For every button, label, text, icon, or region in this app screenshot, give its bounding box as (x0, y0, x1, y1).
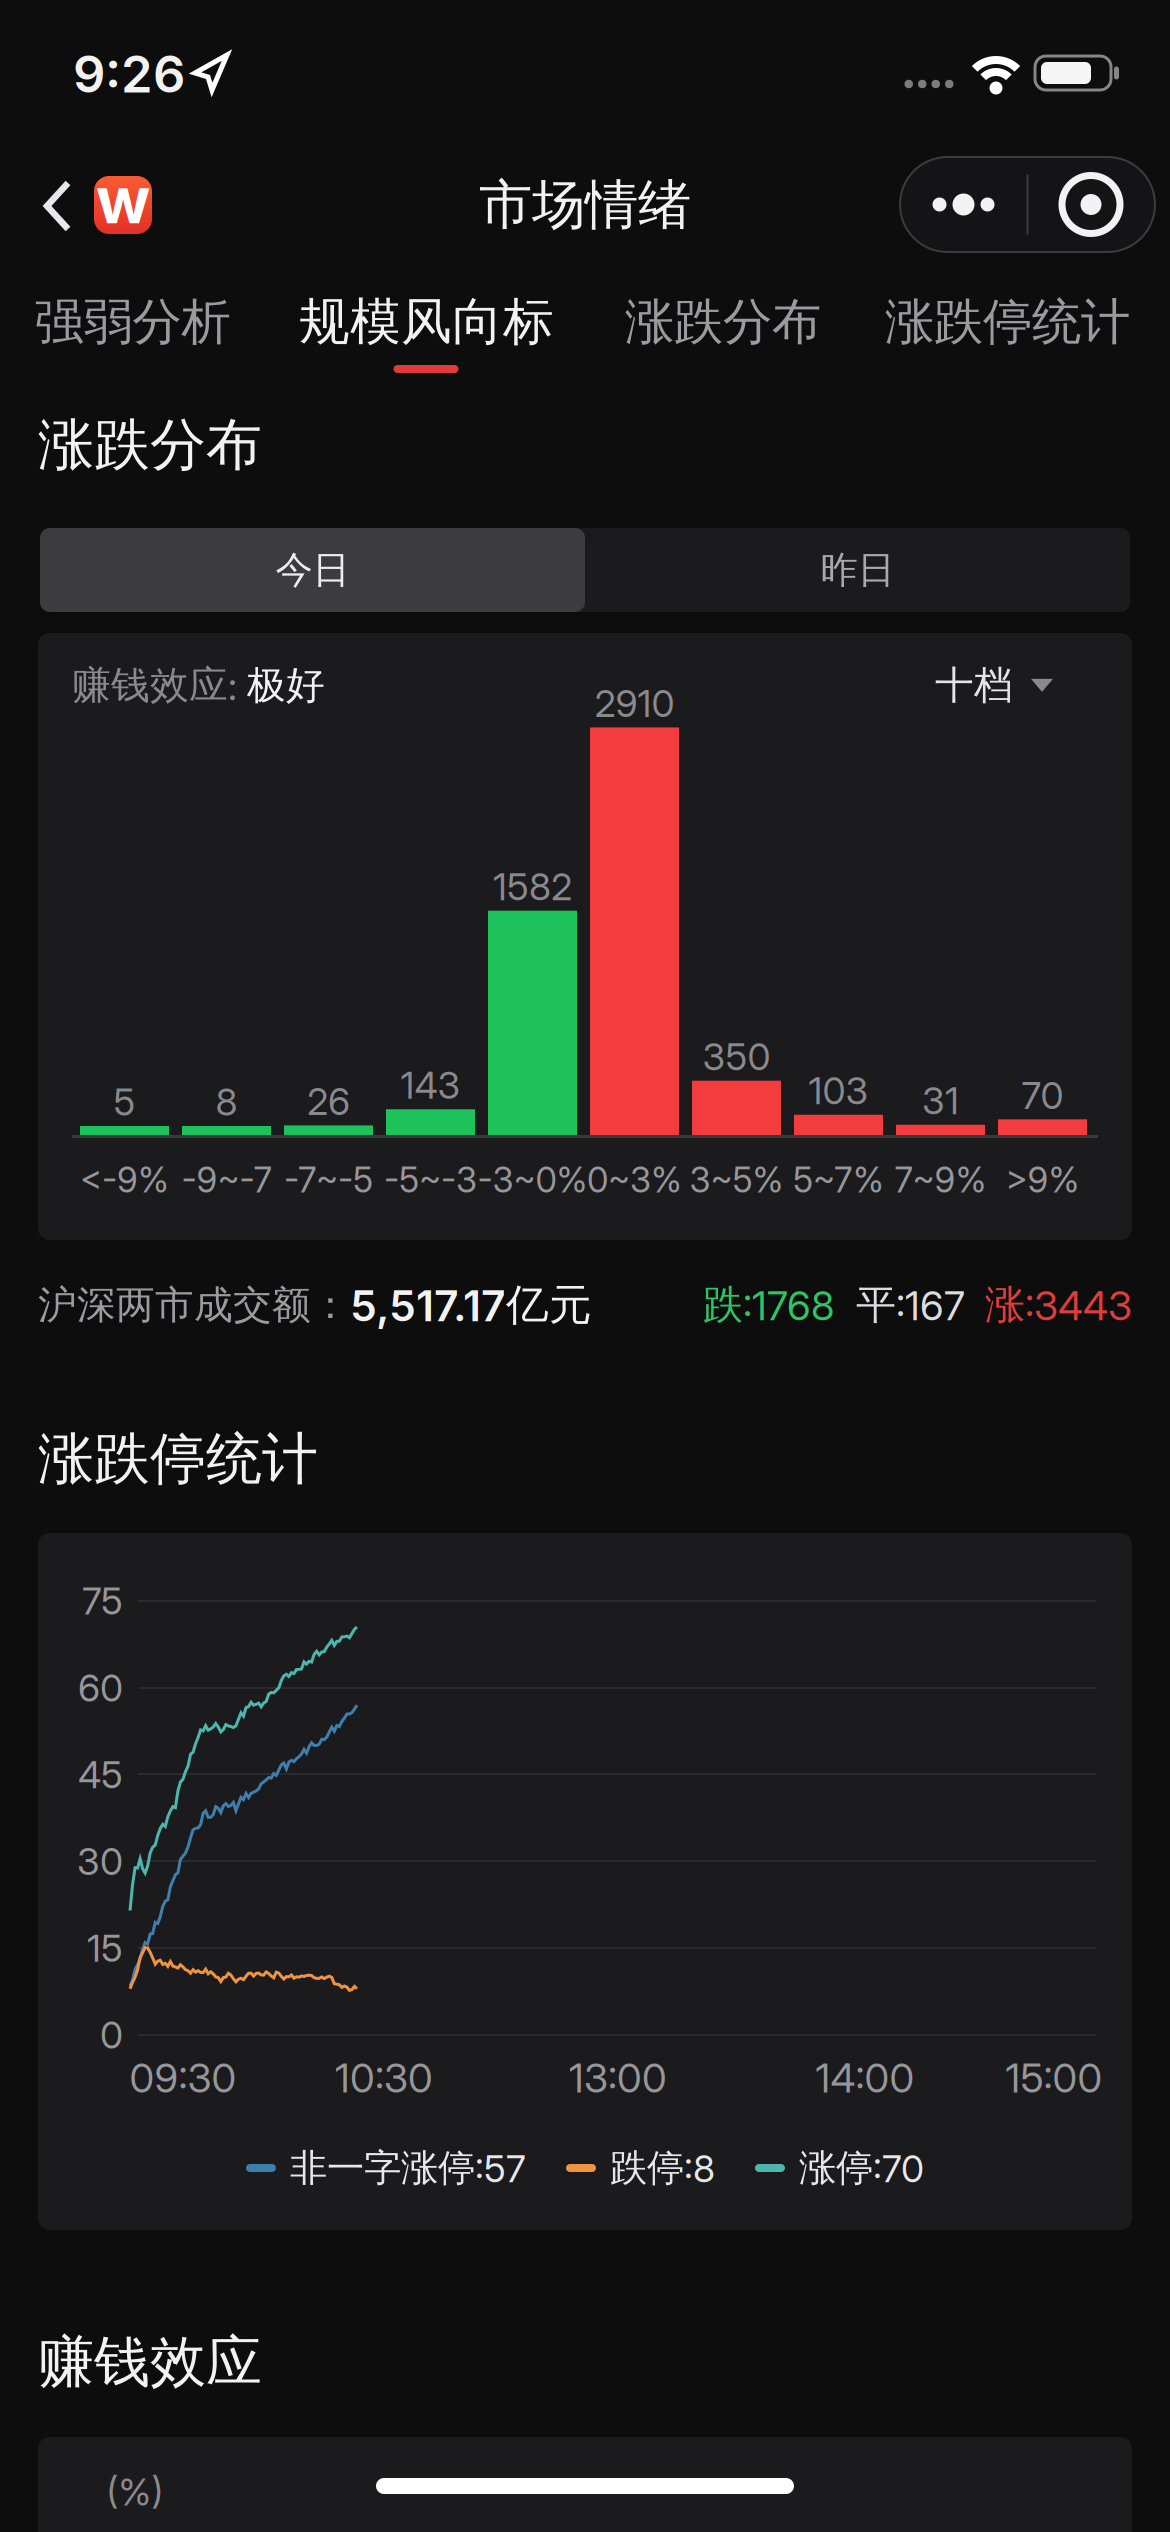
staticText: 极好 (247, 661, 325, 710)
staticText: -3~0% (477, 1159, 587, 1201)
staticText: <-9% (80, 1159, 169, 1201)
staticText: 26 (307, 1079, 350, 1124)
staticText: 350 (702, 1034, 770, 1079)
button[interactable]: 昨日 (585, 528, 1130, 612)
staticText: 09:30 (129, 2054, 236, 2102)
staticText: 5,517.17亿元 (350, 1278, 592, 1332)
button[interactable]: 规模风向标 (286, 277, 566, 367)
staticText: 143 (400, 1063, 460, 1108)
staticText: >9% (1005, 1159, 1079, 1201)
staticText: w (96, 161, 150, 239)
staticText: 8 (215, 1079, 237, 1125)
staticText: 7~9% (894, 1159, 986, 1201)
staticText: 赚钱效应: (72, 661, 247, 710)
staticText: 1582 (493, 864, 572, 909)
staticText: 5~7% (793, 1159, 884, 1201)
staticText: -5~-3 (384, 1159, 477, 1201)
staticText: 昨日 (820, 546, 894, 593)
staticText: -7~-5 (284, 1159, 373, 1201)
staticText: 5 (113, 1079, 135, 1125)
staticText: 涨:3443 (985, 1280, 1132, 1330)
staticText: 3~5% (689, 1159, 783, 1201)
staticText: 沪深两市成交额： (38, 1281, 350, 1329)
staticText: 10:30 (335, 2054, 433, 2102)
staticText: 2910 (594, 681, 674, 726)
staticText: 45 (78, 1752, 123, 1797)
staticText: 赚钱效应 (38, 2327, 262, 2397)
button[interactable]: Close (1027, 157, 1155, 252)
staticText: 规模风向标 (299, 290, 554, 354)
staticText: 103 (808, 1068, 868, 1113)
staticText: 9:26 (73, 43, 185, 105)
staticText: 0~3% (587, 1159, 682, 1201)
staticText: 0 (100, 2012, 123, 2058)
staticText: 市场情绪 (479, 171, 691, 239)
button[interactable]: Back (38, 177, 78, 235)
staticText: -9~-7 (181, 1159, 271, 1201)
button[interactable]: 涨跌分布 (608, 277, 838, 367)
staticText: 涨跌停统计 (38, 1424, 318, 1494)
staticText: 跌停:8 (610, 2144, 715, 2191)
staticText: (%) (106, 2469, 163, 2515)
staticText: 30 (77, 1839, 123, 1884)
button[interactable]: 涨跌停统计 (872, 277, 1142, 367)
staticText: 跌:1768 (703, 1280, 834, 1330)
button[interactable]: 十档 (935, 661, 1053, 710)
staticText: 75 (82, 1578, 123, 1624)
button[interactable]: 强弱分析 (17, 277, 247, 367)
staticText: 14:00 (815, 2054, 914, 2102)
staticText: 70 (1021, 1073, 1063, 1118)
staticText: 15 (87, 1926, 123, 1971)
staticText: 涨跌分布 (38, 410, 262, 480)
staticText: 十档 (935, 661, 1013, 710)
staticText: 15:00 (1005, 2054, 1102, 2102)
staticText: 31 (922, 1078, 959, 1123)
staticText: 13:00 (569, 2054, 667, 2102)
staticText: 非一字涨停:57 (290, 2144, 526, 2191)
staticText: 涨跌停统计 (885, 291, 1130, 353)
button[interactable]: More (900, 157, 1027, 252)
staticText: 60 (78, 1665, 123, 1710)
staticText: 平:167 (856, 1280, 965, 1330)
staticText: 今日 (275, 546, 349, 593)
staticText: 涨停:70 (799, 2144, 924, 2191)
staticText: 涨跌分布 (625, 291, 821, 353)
staticText: 强弱分析 (34, 291, 230, 353)
button[interactable]: 今日 (40, 528, 585, 612)
